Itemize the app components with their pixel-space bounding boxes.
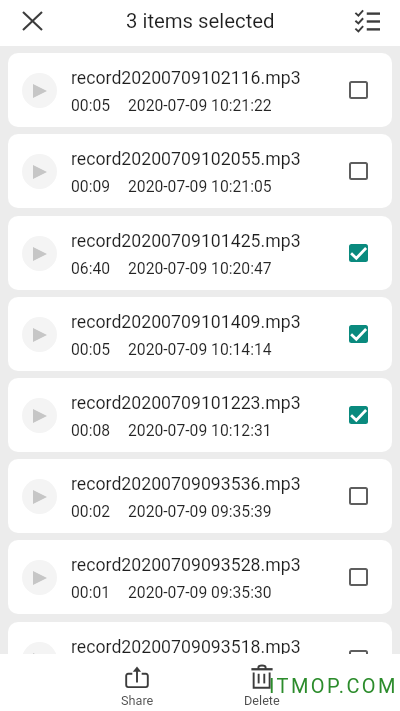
button[interactable]: Selected bbox=[336, 231, 380, 275]
button[interactable]: Play bbox=[22, 73, 57, 108]
button[interactable]: Not selected bbox=[336, 555, 380, 599]
staticText: 2020-07-09 10:21:22 bbox=[128, 96, 272, 114]
staticText: 06:40 bbox=[71, 259, 111, 277]
button[interactable]: Selected bbox=[336, 393, 380, 437]
staticText: 2020-07-09 10:21:05 bbox=[128, 177, 272, 195]
button[interactable]: Play bbox=[22, 236, 57, 271]
staticText: 00:01 bbox=[71, 583, 111, 601]
button[interactable]: Play bbox=[8, 622, 392, 654]
button[interactable]: Play bbox=[22, 154, 57, 189]
button[interactable]: Delete bbox=[230, 659, 294, 707]
staticText: Delete bbox=[244, 693, 280, 707]
button[interactable]: Not selected bbox=[336, 68, 380, 112]
button[interactable]: Play bbox=[8, 540, 392, 614]
staticText: record20200709102116.mp3 bbox=[71, 68, 301, 89]
staticText: 00:02 bbox=[71, 502, 111, 520]
staticText: record20200709093528.mp3 bbox=[71, 555, 301, 576]
button[interactable]: Play bbox=[8, 297, 392, 371]
staticText: record20200709093536.mp3 bbox=[71, 474, 301, 495]
button[interactable]: Play bbox=[8, 459, 392, 533]
button[interactable]: Play bbox=[22, 642, 57, 654]
staticText: record20200709101223.mp3 bbox=[71, 393, 301, 414]
button[interactable]: Not selected bbox=[336, 637, 380, 654]
button[interactable]: Play bbox=[22, 398, 57, 433]
button[interactable]: Play bbox=[22, 317, 57, 352]
button[interactable]: Close bbox=[10, 0, 54, 43]
staticText: 3 items selected bbox=[126, 9, 275, 33]
staticText: 00:05 bbox=[71, 96, 111, 114]
button[interactable]: Play bbox=[8, 378, 392, 452]
staticText: 2020-07-09 10:12:31 bbox=[128, 421, 272, 439]
button[interactable]: Select all bbox=[345, 0, 389, 43]
button[interactable]: Play bbox=[8, 53, 392, 127]
staticText: 00:08 bbox=[71, 421, 111, 439]
staticText: Share bbox=[121, 693, 154, 707]
staticText: 2020-07-09 10:14:14 bbox=[128, 340, 272, 358]
button[interactable]: Share bbox=[105, 659, 169, 707]
button[interactable]: Selected bbox=[336, 312, 380, 356]
button[interactable]: Not selected bbox=[336, 149, 380, 193]
button[interactable]: Play bbox=[8, 134, 392, 208]
staticText: 2020-07-09 09:35:39 bbox=[128, 502, 272, 520]
staticText: 00:09 bbox=[71, 177, 111, 195]
button[interactable]: Not selected bbox=[336, 474, 380, 518]
button[interactable]: Play bbox=[22, 479, 57, 514]
staticText: record20200709101425.mp3 bbox=[71, 231, 301, 252]
staticText: record20200709101409.mp3 bbox=[71, 312, 301, 333]
button[interactable]: Play bbox=[22, 560, 57, 595]
staticText: 00:05 bbox=[71, 340, 111, 358]
staticText: 2020-07-09 10:20:47 bbox=[128, 259, 272, 277]
staticText: record20200709093518.mp3 bbox=[71, 637, 301, 654]
button[interactable]: Play bbox=[8, 216, 392, 290]
staticText: 2020-07-09 09:35:30 bbox=[128, 583, 272, 601]
staticText: ITMOP.COM bbox=[269, 674, 398, 697]
staticText: record20200709102055.mp3 bbox=[71, 149, 301, 170]
